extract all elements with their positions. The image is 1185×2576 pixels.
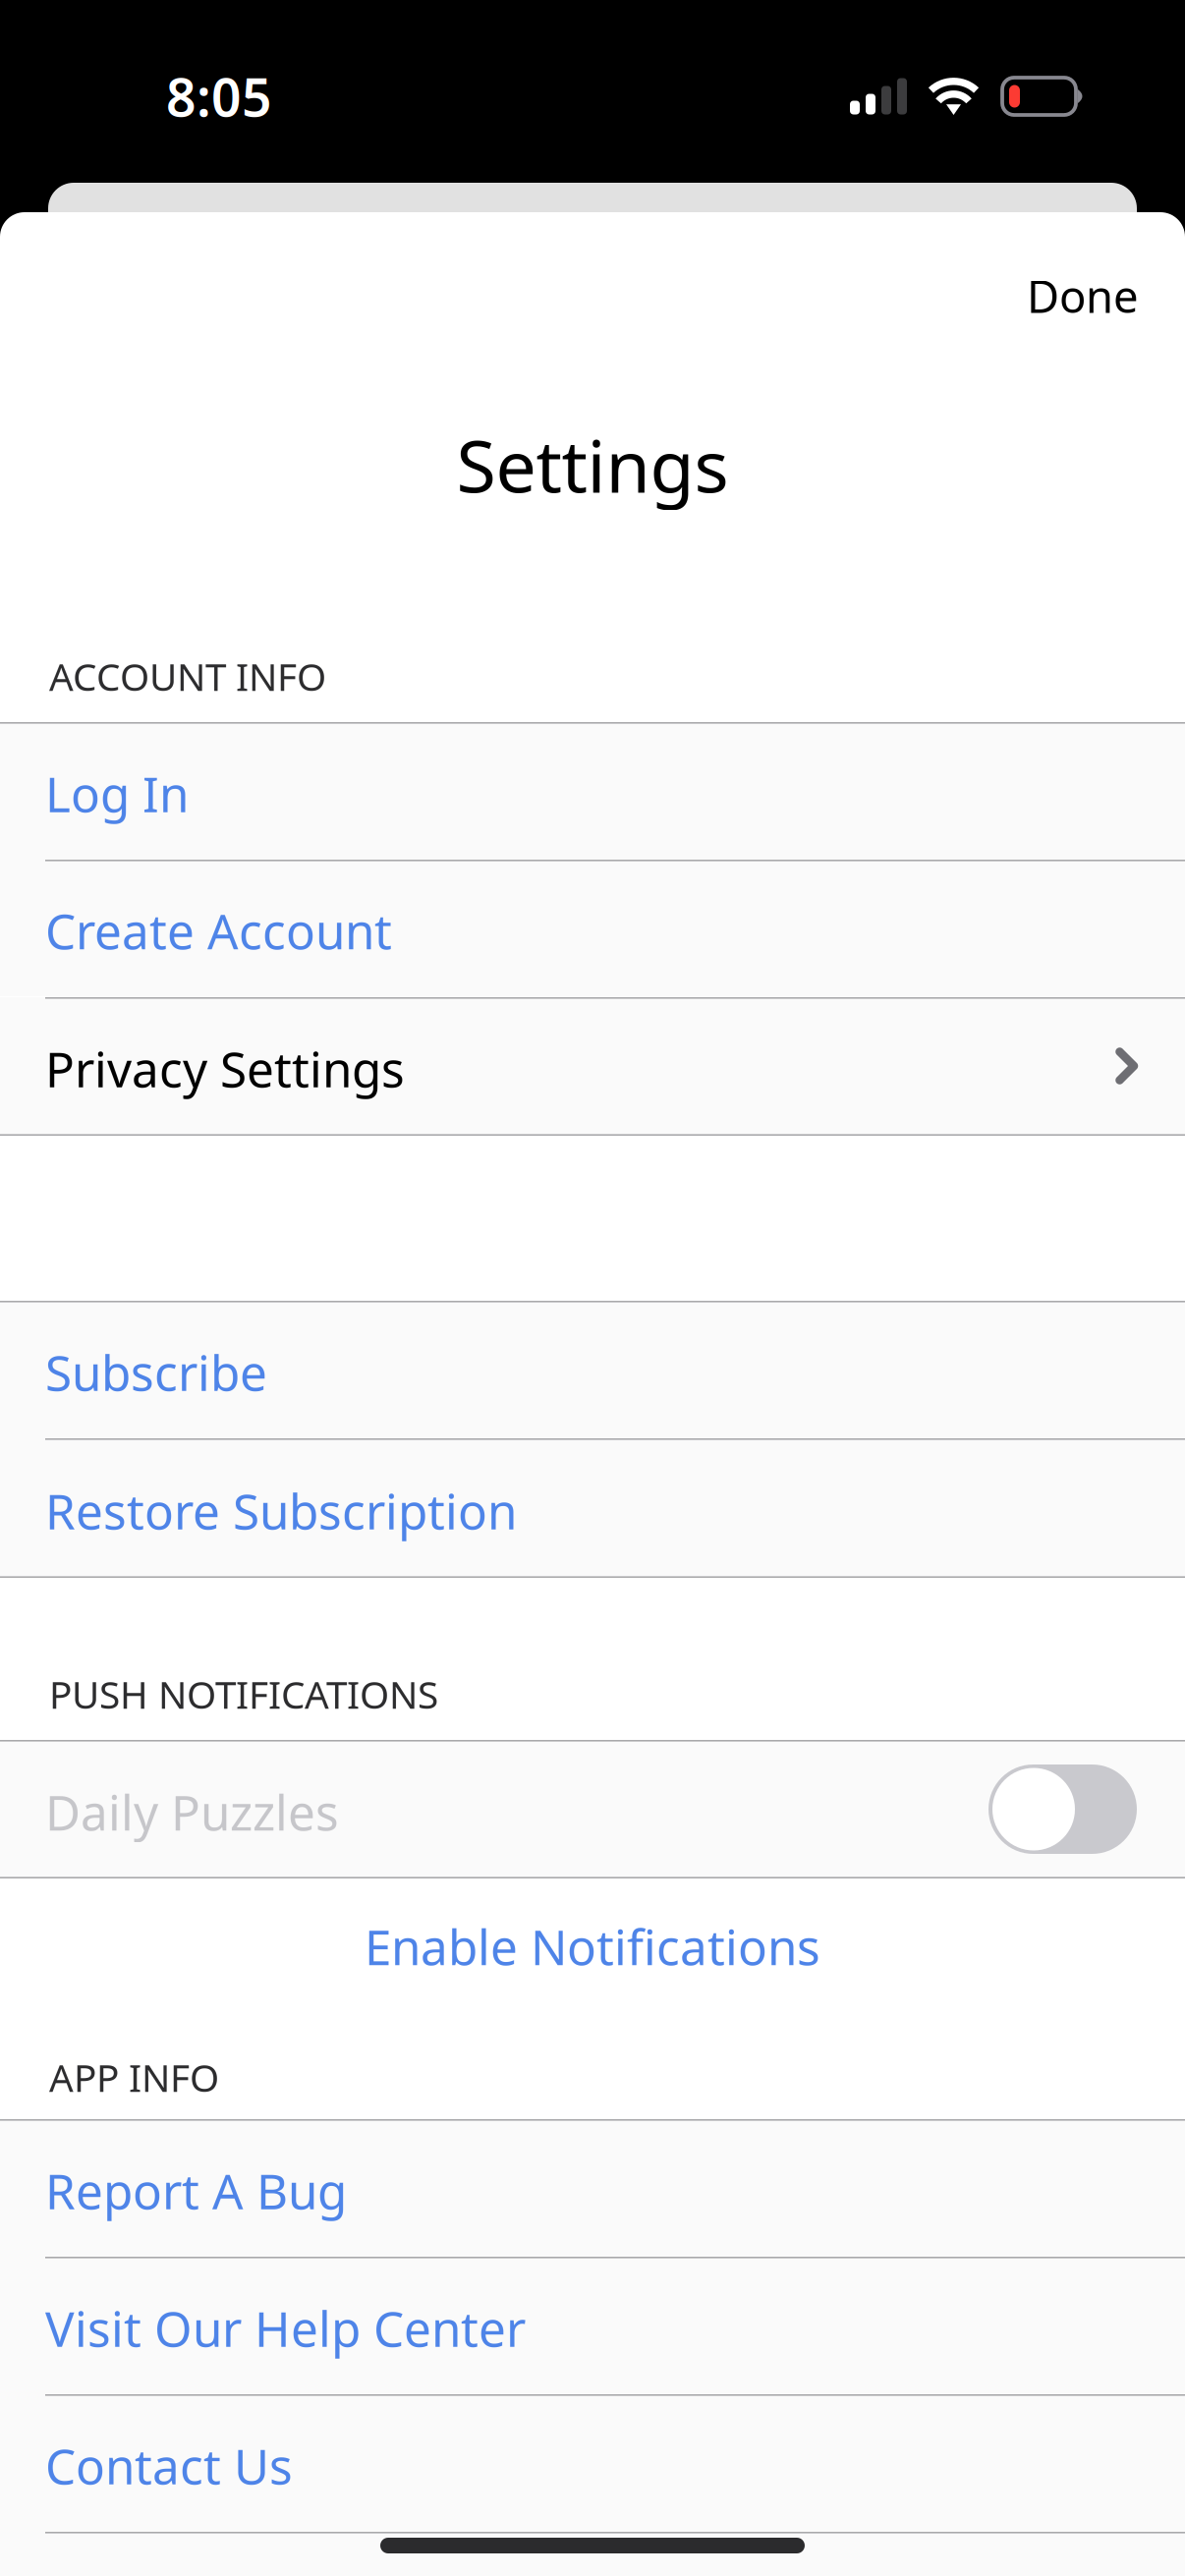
staticText: Done bbox=[1027, 266, 1139, 325]
staticText: Create Account bbox=[45, 898, 392, 963]
staticText: Log In bbox=[45, 761, 189, 825]
staticText: Daily Puzzles bbox=[45, 1779, 339, 1844]
staticText: Visit Our Help Center bbox=[45, 2296, 526, 2360]
button[interactable]: Subscribe bbox=[0, 1301, 1185, 1438]
staticText: PUSH NOTIFICATIONS bbox=[49, 1669, 438, 1719]
staticText: Contact Us bbox=[45, 2433, 293, 2498]
staticText: Report A Bug bbox=[45, 2158, 347, 2223]
staticText: Subscribe bbox=[45, 1340, 267, 1404]
staticText: Enable Notifications bbox=[365, 1914, 820, 1978]
button[interactable]: Enable Notifications bbox=[0, 1878, 1185, 2014]
staticText: ACCOUNT INFO bbox=[49, 651, 326, 701]
button[interactable]: Done bbox=[1001, 252, 1164, 339]
button[interactable]: Log In bbox=[0, 722, 1185, 860]
staticText: Privacy Settings bbox=[45, 1036, 405, 1101]
button[interactable]: Report A Bug bbox=[0, 2119, 1185, 2257]
button[interactable] bbox=[0, 2532, 1185, 2576]
button[interactable]: Create Account bbox=[0, 860, 1185, 996]
button[interactable]: Daily Puzzles bbox=[988, 1764, 1137, 1854]
button[interactable]: Privacy Settings bbox=[0, 997, 1185, 1135]
staticText: APP INFO bbox=[49, 2052, 219, 2102]
button[interactable]: Contact Us bbox=[0, 2394, 1185, 2532]
staticText: Settings bbox=[456, 417, 729, 513]
button[interactable]: Restore Subscription bbox=[0, 1438, 1185, 1578]
staticText: Restore Subscription bbox=[45, 1478, 517, 1543]
staticText: 8:05 bbox=[166, 62, 272, 131]
button[interactable]: Visit Our Help Center bbox=[0, 2257, 1185, 2394]
